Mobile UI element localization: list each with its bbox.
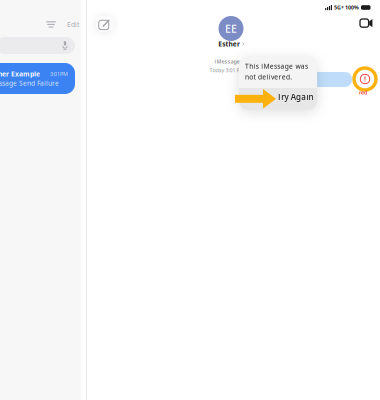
button[interactable]: ther Example	[0, 63, 75, 94]
staticText: 5G+ 100%	[334, 4, 359, 11]
staticText: essage Send Failure	[0, 79, 59, 88]
staticText: not delivered.	[245, 72, 292, 81]
button[interactable]: Edit	[65, 17, 81, 32]
staticText: Edit	[67, 20, 79, 29]
staticText: This iMessage was	[245, 62, 308, 70]
button[interactable]: EE	[211, 16, 251, 50]
staticText: 3:01PM	[50, 70, 68, 77]
staticText: Today 3:01 PM	[209, 67, 244, 74]
staticText: iMessage	[214, 58, 239, 65]
staticText: red	[359, 89, 367, 96]
button[interactable]: New message	[96, 16, 113, 32]
staticText: ther Example	[0, 69, 40, 78]
button[interactable]: Try Again	[239, 88, 317, 110]
staticText: Esther	[218, 39, 240, 48]
button[interactable]: Filter messages	[43, 18, 59, 31]
staticText: EE	[225, 21, 237, 36]
button[interactable]: FaceTime	[356, 15, 376, 31]
staticText: Try Again	[277, 92, 313, 102]
